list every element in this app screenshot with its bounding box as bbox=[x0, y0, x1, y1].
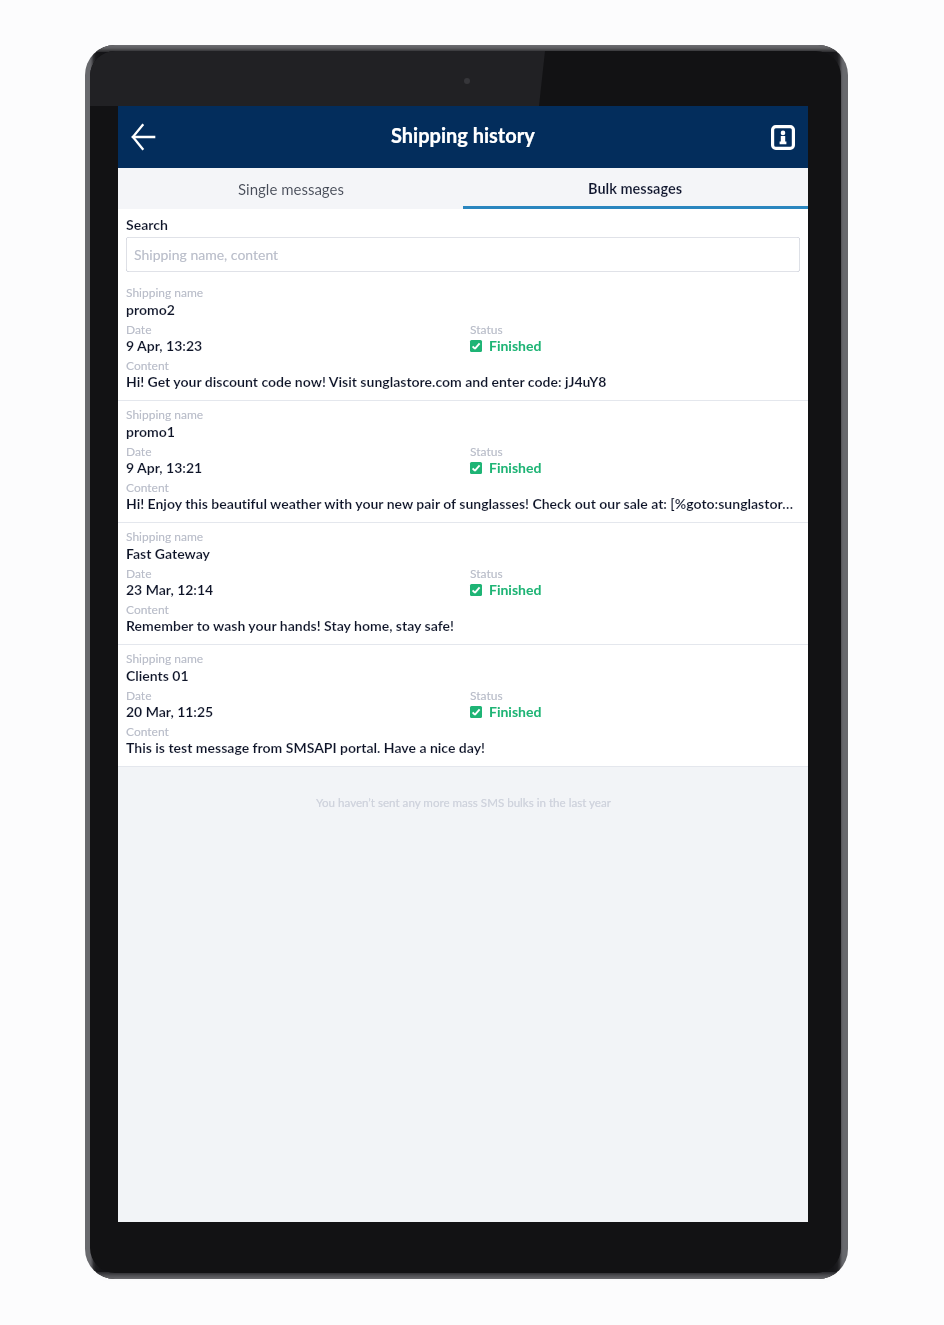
staticText: Shipping name bbox=[126, 285, 204, 299]
staticText: Bulk messages bbox=[588, 180, 683, 197]
staticText: 23 Mar, 12:14 bbox=[126, 581, 214, 598]
staticText: promo1 bbox=[126, 423, 175, 440]
staticText: Status bbox=[470, 688, 503, 702]
staticText: Content bbox=[126, 480, 169, 494]
staticText: Shipping name bbox=[126, 651, 204, 665]
staticText: promo2 bbox=[126, 301, 175, 318]
staticText: Finished bbox=[489, 459, 542, 476]
button[interactable]: Shipping name, content bbox=[126, 237, 800, 272]
button[interactable]: Back bbox=[123, 116, 165, 158]
staticText: 9 Apr, 13:23 bbox=[126, 337, 203, 354]
staticText: Content bbox=[126, 724, 169, 738]
staticText: Date bbox=[126, 688, 152, 702]
button[interactable]: Shipping name bbox=[118, 401, 808, 522]
staticText: Single messages bbox=[238, 180, 344, 198]
staticText: Status bbox=[470, 566, 503, 580]
staticText: Status bbox=[470, 322, 503, 336]
staticText: Shipping name bbox=[126, 529, 204, 543]
staticText: Finished bbox=[489, 581, 542, 598]
button[interactable]: Information bbox=[762, 116, 804, 158]
staticText: Fast Gateway bbox=[126, 545, 210, 562]
staticText: Clients 01 bbox=[126, 667, 189, 684]
staticText: Date bbox=[126, 566, 152, 580]
staticText: 20 Mar, 11:25 bbox=[126, 703, 214, 720]
staticText: Finished bbox=[489, 703, 542, 720]
button[interactable]: Single messages bbox=[118, 168, 463, 209]
staticText: Remember to wash your hands! Stay home, … bbox=[126, 617, 454, 634]
staticText: Hi! Enjoy this beautiful weather with yo… bbox=[126, 495, 793, 512]
staticText: Finished bbox=[489, 337, 542, 354]
staticText: You haven’t sent any more mass SMS bulks… bbox=[316, 796, 611, 810]
staticText: Content bbox=[126, 358, 169, 372]
staticText: Search bbox=[126, 216, 168, 233]
button[interactable]: Shipping name bbox=[118, 279, 808, 400]
staticText: Shipping name, content bbox=[134, 246, 279, 263]
button[interactable]: Shipping name bbox=[118, 523, 808, 644]
button[interactable]: Shipping name bbox=[118, 645, 808, 766]
staticText: Shipping history bbox=[391, 123, 535, 147]
staticText: This is test message from SMSAPI portal.… bbox=[126, 739, 486, 756]
staticText: Date bbox=[126, 444, 152, 458]
staticText: Status bbox=[470, 444, 503, 458]
staticText: Hi! Get your discount code now! Visit su… bbox=[126, 373, 607, 390]
staticText: Date bbox=[126, 322, 152, 336]
staticText: 9 Apr, 13:21 bbox=[126, 459, 203, 476]
staticText: Content bbox=[126, 602, 169, 616]
staticText: Shipping name bbox=[126, 407, 204, 421]
button[interactable]: Bulk messages bbox=[463, 168, 808, 209]
